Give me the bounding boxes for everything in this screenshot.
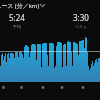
other: Change metric	[37, 0, 48, 11]
staticText: ペース (分／km)	[0, 2, 40, 10]
button[interactable]: ペース (分／km)	[0, 0, 100, 11]
button[interactable]: 5:24	[9, 12, 25, 29]
staticText: ベスト	[75, 24, 88, 29]
button[interactable]: 3:30	[73, 12, 89, 29]
staticText: 平均	[13, 24, 21, 29]
staticText: 5:24	[9, 12, 25, 23]
staticText: 3:30	[73, 12, 89, 23]
